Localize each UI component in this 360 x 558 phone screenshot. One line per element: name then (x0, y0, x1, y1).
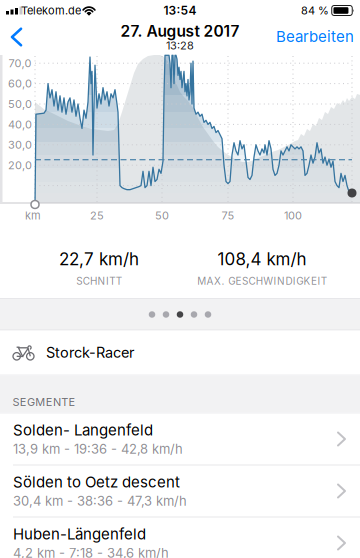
staticText: 50,0 (8, 98, 32, 110)
staticText: 13,9 km - 19:36 - 42,8 km/h (13, 442, 183, 456)
staticText: SEGMENTE (12, 396, 76, 408)
staticText: 25 (90, 209, 104, 222)
staticText: 30,4 km - 38:36 - 47,3 km/h (13, 494, 187, 508)
staticText: 4,2 km - 7:18 - 34,6 km/h (13, 546, 169, 558)
staticText: 22,7 km/h (59, 249, 139, 269)
staticText: 27. August 2017 (120, 22, 239, 40)
staticText: 108,4 km/h (217, 249, 306, 269)
staticText: Sölden to Oetz descent (13, 473, 180, 491)
staticText: Telekom.de (21, 4, 81, 17)
button[interactable]: Solden- Langenfeld (0, 413, 360, 465)
staticText: 20,0 (8, 159, 32, 171)
staticText: 13:54 (163, 4, 196, 17)
staticText: 30,0 (8, 138, 32, 151)
staticText: 100 (284, 209, 302, 222)
button[interactable]: Bearbeiten (276, 22, 354, 51)
staticText: Bearbeiten (276, 28, 354, 45)
staticText: 60,0 (8, 77, 32, 90)
staticText: km (25, 209, 41, 222)
staticText: MAX. GESCHWINDIGKEIT (197, 275, 327, 287)
staticText: 50 (155, 209, 169, 222)
staticText: 70,0 (8, 57, 31, 69)
staticText: Solden- Langenfeld (13, 421, 153, 439)
staticText: Storck-Racer (46, 344, 134, 361)
button[interactable]: Zurück (4, 23, 29, 51)
button[interactable]: Storck-Racer (0, 330, 360, 375)
button[interactable]: Sölden to Oetz descent (0, 465, 360, 517)
staticText: 40,0 (8, 118, 32, 131)
staticText: SCHNITT (76, 275, 122, 287)
staticText: 75 (221, 209, 234, 222)
staticText: Huben-Längenfeld (13, 525, 146, 543)
staticText: 84 % (301, 4, 329, 17)
staticText: 13:28 (166, 39, 194, 52)
button[interactable]: Huben-Längenfeld (0, 517, 360, 558)
